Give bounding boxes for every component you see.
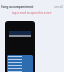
button[interactable]: see all bbox=[54, 5, 63, 9]
staticText: tap a card to open the score bbox=[12, 11, 52, 15]
button[interactable] bbox=[5, 21, 35, 72]
button[interactable]: Song accompaniment bbox=[1, 5, 34, 9]
